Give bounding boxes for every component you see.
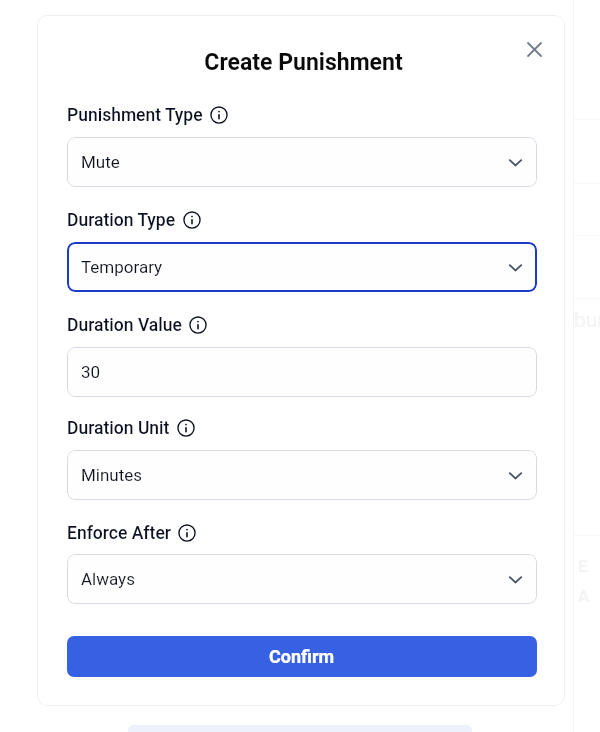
- button[interactable]: Punishment Type: [67, 104, 228, 126]
- button[interactable]: Confirm: [67, 636, 537, 677]
- staticText: Confirm: [269, 646, 335, 667]
- button[interactable]: Enforce After: [67, 522, 196, 544]
- button[interactable]: Always: [67, 554, 537, 604]
- button[interactable]: Temporary: [67, 242, 537, 292]
- button[interactable]: Duration Value: [67, 314, 207, 336]
- staticText: Mute: [81, 152, 120, 172]
- button[interactable]: Duration Unit: [67, 417, 195, 439]
- staticText: Create Punishment: [204, 49, 403, 76]
- staticText: Always: [81, 569, 135, 589]
- staticText: Duration Type: [67, 210, 176, 231]
- staticText: Minutes: [81, 465, 143, 485]
- staticText: Temporary: [81, 257, 163, 277]
- button[interactable]: 30: [67, 347, 537, 397]
- button[interactable]: Mute: [67, 137, 537, 187]
- staticText: bur: [574, 308, 600, 333]
- staticText: Punishment Type: [67, 105, 203, 126]
- staticText: 30: [81, 362, 101, 382]
- button[interactable]: Minutes: [67, 450, 537, 500]
- staticText: Enforce After: [67, 523, 171, 544]
- staticText: E A: [578, 556, 590, 606]
- staticText: Duration Value: [67, 315, 182, 336]
- staticText: Duration Unit: [67, 418, 170, 439]
- button[interactable]: Duration Type: [67, 209, 201, 231]
- button[interactable]: Close dialog: [519, 34, 549, 64]
